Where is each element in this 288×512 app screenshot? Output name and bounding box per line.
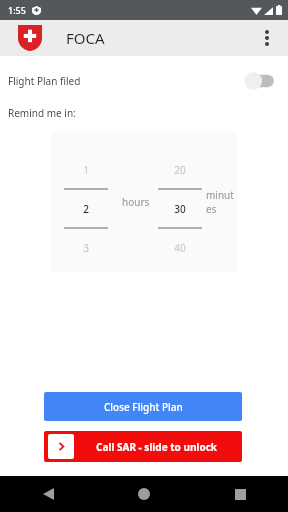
button[interactable]: More options — [252, 23, 282, 53]
staticText: 30 — [174, 202, 186, 216]
staticText: 20 — [174, 163, 186, 177]
button[interactable]: Slide to unlock — [48, 434, 74, 459]
button[interactable]: Recent apps — [192, 476, 288, 512]
button[interactable]: 20 — [158, 149, 202, 255]
staticText: 3 — [83, 241, 89, 255]
staticText: minutes — [206, 188, 237, 216]
staticText: Flight Plan filed — [8, 74, 81, 88]
button[interactable]: 1 — [64, 149, 108, 255]
staticText: Call SAR - slide to unlock — [96, 440, 218, 454]
button[interactable]: Back — [0, 476, 96, 512]
button[interactable]: Call SAR - slide to unlock — [44, 431, 242, 462]
staticText: 2 — [83, 202, 89, 216]
button[interactable]: Flight Plan filed — [0, 70, 288, 92]
staticText: FOCA — [66, 28, 105, 48]
button[interactable]: Home — [96, 476, 192, 512]
staticText: Remind me in: — [8, 106, 76, 120]
staticText: Close Flight Plan — [104, 400, 183, 414]
staticText: 40 — [174, 241, 186, 255]
button[interactable]: Close Flight Plan — [44, 392, 242, 421]
staticText: 1 — [83, 163, 89, 177]
other: FOCA logo — [18, 25, 42, 51]
staticText: 1:55 — [8, 4, 26, 16]
staticText: hours — [122, 195, 150, 209]
